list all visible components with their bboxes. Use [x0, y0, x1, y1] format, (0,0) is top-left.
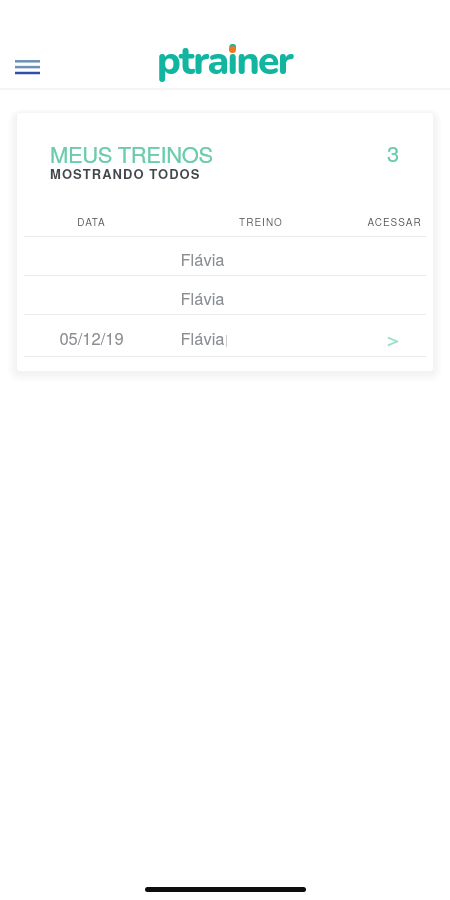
staticText: 05/12/19 [59, 326, 124, 350]
staticText: Flávia [180, 326, 225, 350]
staticText: 3 [387, 137, 400, 169]
staticText: ptrainer [157, 35, 293, 88]
button[interactable]: Flávia [17, 275, 433, 314]
button[interactable]: Open navigation menu [2, 44, 53, 90]
staticText: MOSTRANDO TODOS [50, 164, 201, 183]
staticText: Flávia [180, 286, 225, 310]
staticText: MEUS TREINOS [50, 138, 213, 170]
other: Acessar treino [388, 337, 398, 346]
staticText: Flávia [180, 247, 225, 271]
button[interactable]: Flávia [17, 236, 433, 275]
staticText: DATA [77, 215, 106, 229]
staticText: TREINO [239, 215, 283, 229]
staticText: ACESSAR [367, 215, 422, 229]
button[interactable]: 05/12/19 [17, 314, 433, 356]
